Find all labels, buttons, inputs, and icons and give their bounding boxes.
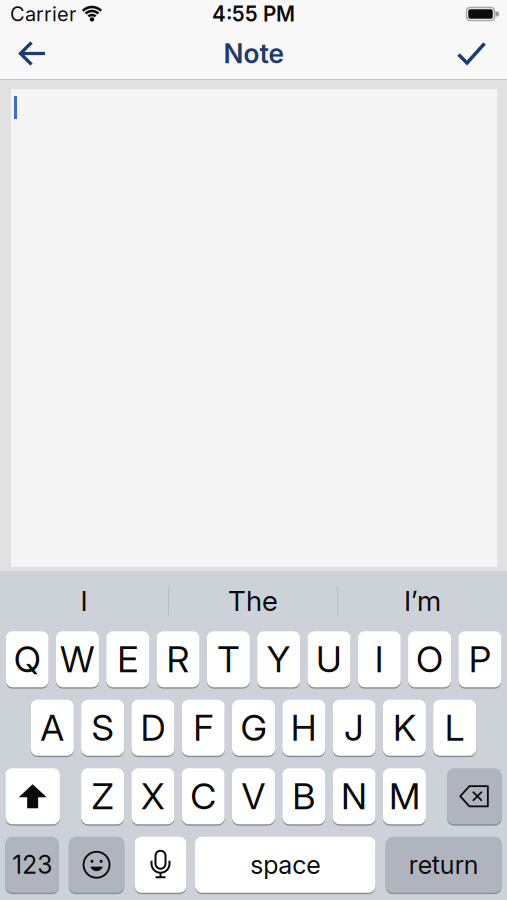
button[interactable]: B <box>282 768 325 824</box>
button[interactable]: S <box>81 700 124 756</box>
button[interactable]: M <box>383 768 426 824</box>
button[interactable]: V <box>232 768 275 824</box>
staticText: S <box>92 706 114 750</box>
button[interactable]: P <box>458 631 501 687</box>
button[interactable]: G <box>232 700 275 756</box>
staticText: I’m <box>404 584 441 618</box>
button[interactable]: return <box>386 837 502 893</box>
button[interactable]: C <box>182 768 225 824</box>
staticText: T <box>217 637 239 681</box>
staticText: E <box>117 637 138 681</box>
staticText: K <box>393 706 416 750</box>
button[interactable]: R <box>156 631 199 687</box>
button[interactable]: A <box>31 700 74 756</box>
staticText: Q <box>14 637 41 681</box>
button[interactable]: D <box>131 700 174 756</box>
staticText: return <box>409 849 479 880</box>
button[interactable]: Shift <box>5 768 60 824</box>
staticText: G <box>240 706 266 750</box>
staticText: L <box>445 706 465 750</box>
button[interactable]: space <box>195 837 375 893</box>
button[interactable]: X <box>131 768 174 824</box>
staticText: Z <box>92 774 114 818</box>
staticText: space <box>250 849 320 880</box>
staticText: Carrier <box>10 2 76 26</box>
staticText: A <box>40 706 64 750</box>
staticText: 4:55 PM <box>212 1 295 26</box>
button[interactable]: Save <box>457 30 507 77</box>
button[interactable]: F <box>182 700 225 756</box>
staticText: H <box>291 706 317 750</box>
staticText: I <box>375 637 384 681</box>
staticText: O <box>416 637 443 681</box>
staticText: F <box>193 706 213 750</box>
button[interactable]: Z <box>81 768 124 824</box>
button[interactable]: Back <box>0 29 46 77</box>
staticText: R <box>166 637 189 681</box>
button[interactable]: Y <box>257 631 300 687</box>
staticText: V <box>241 774 265 818</box>
button[interactable]: E <box>106 631 149 687</box>
staticText: 123 <box>12 850 52 880</box>
staticText: The <box>228 584 278 618</box>
button[interactable]: The <box>169 570 337 631</box>
staticText: B <box>292 774 315 818</box>
button[interactable]: K <box>383 700 426 756</box>
button[interactable]: W <box>56 631 99 687</box>
button[interactable]: Dictate <box>135 837 186 893</box>
staticText: N <box>341 774 367 818</box>
button[interactable]: T <box>207 631 250 687</box>
button[interactable]: I <box>358 631 401 687</box>
staticText: D <box>140 706 165 750</box>
button[interactable]: U <box>307 631 350 687</box>
button[interactable]: 123 <box>5 837 59 893</box>
button[interactable]: Q <box>6 631 49 687</box>
button[interactable]: N <box>333 768 376 824</box>
staticText: P <box>469 637 491 681</box>
button[interactable]: I’m <box>338 570 507 631</box>
staticText: J <box>344 706 364 750</box>
staticText: U <box>316 637 342 681</box>
staticText: Note <box>223 37 283 70</box>
staticText: W <box>60 637 95 681</box>
button[interactable]: O <box>408 631 451 687</box>
button[interactable]: I <box>0 570 168 631</box>
button[interactable]: Delete <box>447 768 502 824</box>
button[interactable]: J <box>333 700 376 756</box>
staticText: C <box>190 774 216 818</box>
staticText: X <box>141 774 165 818</box>
staticText: Y <box>267 637 291 681</box>
staticText: I <box>80 584 87 618</box>
button[interactable]: H <box>282 700 325 756</box>
button[interactable]: L <box>433 700 476 756</box>
button[interactable]: Emoji <box>69 837 124 893</box>
staticText: M <box>389 774 420 818</box>
